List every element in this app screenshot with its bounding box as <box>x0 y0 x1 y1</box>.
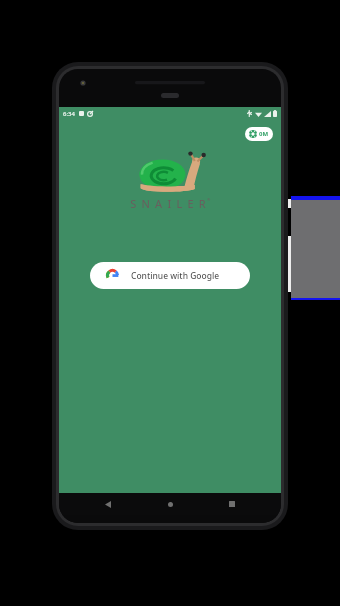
button[interactable]: Continue with Google <box>90 262 250 289</box>
button[interactable]: Back <box>99 495 117 513</box>
button[interactable]: Recent apps <box>223 495 241 513</box>
button[interactable]: Data saver status <box>245 127 273 141</box>
staticText: ® <box>207 197 211 202</box>
staticText: S N A I L E R <box>130 196 207 211</box>
button[interactable]: Home <box>161 495 179 513</box>
staticText: 6:34 <box>63 110 75 118</box>
staticText: Continue with Google <box>131 270 220 282</box>
staticText: 0M <box>259 130 269 138</box>
